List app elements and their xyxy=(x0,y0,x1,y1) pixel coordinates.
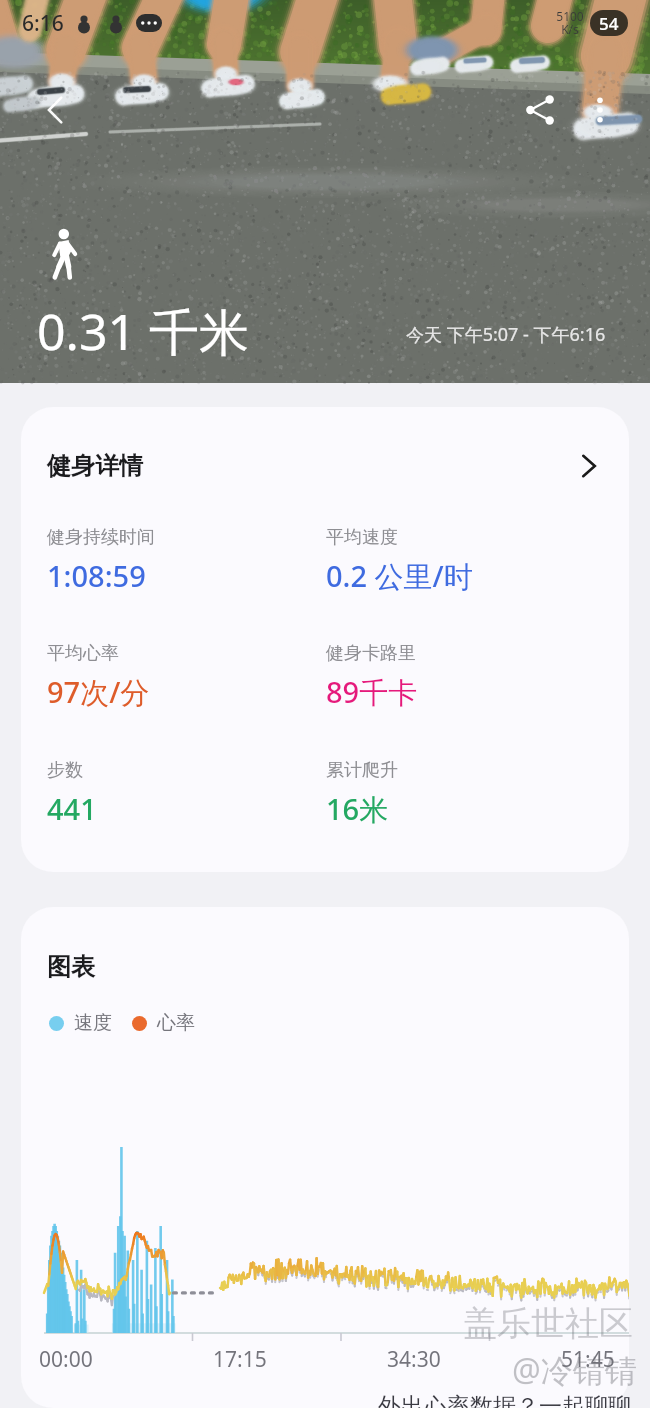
staticText: 17:15 xyxy=(213,1345,267,1374)
staticText: 盖乐世社区 xyxy=(463,1302,633,1345)
staticText: 今天 下午5:07 - 下午6:16 xyxy=(406,322,606,347)
staticText: 步数 xyxy=(47,759,83,782)
staticText: 5100 K/s xyxy=(556,8,584,38)
button[interactable]: More options xyxy=(578,88,622,132)
staticText: 平均心率 xyxy=(47,642,119,665)
staticText: 54 xyxy=(599,12,619,35)
button[interactable]: 健身详情 xyxy=(21,407,629,525)
button[interactable]: Share xyxy=(518,88,562,132)
staticText: 00:00 xyxy=(39,1345,93,1374)
staticText: 累计爬升 xyxy=(326,759,398,782)
staticText: 16米 xyxy=(326,789,389,829)
staticText: 健身卡路里 xyxy=(326,642,416,665)
button[interactable]: Back xyxy=(34,88,78,132)
staticText: 34:30 xyxy=(387,1345,441,1374)
staticText: 51:45 xyxy=(561,1345,615,1374)
staticText: 441 xyxy=(47,789,97,828)
staticText: 外出心率数据？一起聊聊 xyxy=(378,1392,631,1408)
staticText: 0.2 公里/时 xyxy=(326,556,473,596)
staticText: @冷锖锖 xyxy=(512,1348,637,1392)
staticText: 速度 xyxy=(74,1011,112,1035)
staticText: 89千卡 xyxy=(326,672,418,712)
staticText: 健身详情 xyxy=(47,451,143,481)
staticText: 97次/分 xyxy=(47,672,150,712)
staticText: 图表 xyxy=(47,952,95,982)
staticText: 6:16 xyxy=(22,9,64,38)
other: Walking xyxy=(50,228,80,280)
staticText: 1:08:59 xyxy=(47,556,146,595)
staticText: 平均速度 xyxy=(326,526,398,549)
staticText: 0.31 千米 xyxy=(37,297,250,365)
staticText: 健身持续时间 xyxy=(47,526,155,549)
staticText: 心率 xyxy=(157,1011,195,1035)
